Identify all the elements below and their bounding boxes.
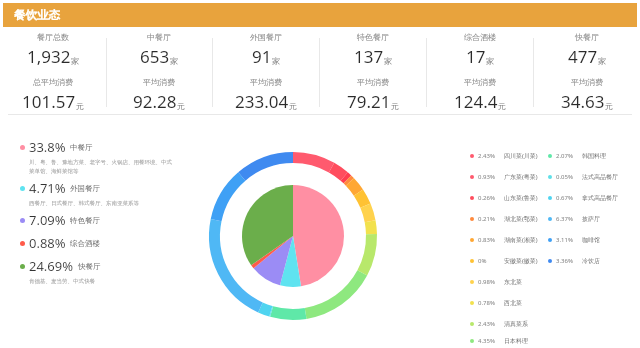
button[interactable]: 0.05% bbox=[548, 166, 618, 187]
staticText: 川、粤、鲁、豫地方菜、老字号、火锅店、用餐环境、中式 bbox=[29, 159, 172, 166]
staticText: 中餐厅 bbox=[70, 143, 93, 152]
staticText: 0.78% bbox=[478, 299, 495, 307]
staticText: 快餐厅 bbox=[78, 262, 101, 271]
staticText: 33.8% bbox=[29, 138, 66, 156]
staticText: 日本料理 bbox=[504, 337, 528, 345]
button[interactable]: 0.21% bbox=[470, 208, 538, 229]
staticText: 元 bbox=[498, 101, 506, 111]
staticText: 24.69% bbox=[29, 257, 74, 275]
staticText: 元 bbox=[76, 101, 84, 111]
staticText: 西餐厅、日式餐厅、韩式餐厅、东南亚菜系等 bbox=[29, 200, 139, 207]
staticText: 综合酒楼 bbox=[70, 239, 100, 248]
button[interactable]: 6.37% bbox=[548, 208, 600, 229]
staticText: 3.36% bbox=[556, 257, 573, 265]
staticText: 家 bbox=[71, 56, 79, 66]
staticText: 92.28 bbox=[133, 90, 177, 113]
button[interactable]: 餐厅总数 bbox=[0, 30, 106, 114]
staticText: 平均消费 bbox=[143, 77, 175, 87]
staticText: 元 bbox=[605, 101, 613, 111]
staticText: 特色餐厅 bbox=[70, 216, 100, 225]
staticText: 0.88% bbox=[29, 234, 66, 252]
staticText: 平均消费 bbox=[357, 77, 389, 87]
staticText: 湖南菜(湘菜) bbox=[504, 236, 538, 244]
button[interactable]: 7.09% bbox=[20, 211, 100, 229]
button[interactable]: 0.93% bbox=[470, 166, 538, 187]
button[interactable]: 4.35% bbox=[470, 334, 528, 348]
button[interactable]: 2.43% bbox=[470, 313, 528, 334]
staticText: 咖啡馆 bbox=[582, 236, 600, 244]
staticText: 总平均消费 bbox=[33, 77, 73, 87]
button[interactable]: 0.67% bbox=[548, 187, 618, 208]
staticText: 东北菜 bbox=[504, 278, 522, 286]
staticText: 家 bbox=[170, 56, 178, 66]
staticText: 元 bbox=[289, 101, 297, 111]
staticText: 综合酒楼 bbox=[464, 32, 496, 42]
staticText: 拿式高品餐厅 bbox=[582, 194, 618, 202]
staticText: 法式高品餐厅 bbox=[582, 173, 618, 181]
staticText: 广东菜(粤菜) bbox=[504, 173, 538, 181]
button[interactable]: 3.36% bbox=[548, 250, 600, 271]
staticText: 79.21 bbox=[347, 90, 391, 113]
staticText: 2.07% bbox=[556, 152, 573, 160]
staticText: 0.21% bbox=[478, 215, 495, 223]
staticText: 西北菜 bbox=[504, 299, 522, 307]
staticText: 披萨厅 bbox=[582, 215, 600, 223]
button[interactable]: 2.43% bbox=[470, 145, 538, 166]
button[interactable]: 特色餐厅 bbox=[319, 30, 426, 114]
button[interactable]: 餐饮业态 bbox=[3, 3, 637, 27]
staticText: 101.57 bbox=[22, 90, 76, 113]
staticText: 特色餐厅 bbox=[357, 32, 389, 42]
staticText: 家 bbox=[384, 56, 392, 66]
staticText: 6.37% bbox=[556, 215, 573, 223]
button[interactable]: 快餐厅 bbox=[533, 30, 640, 114]
staticText: 餐厅总数 bbox=[37, 32, 69, 42]
button[interactable]: 0.83% bbox=[470, 229, 538, 250]
button[interactable]: 中餐厅 bbox=[106, 30, 212, 114]
staticText: 233.04 bbox=[235, 90, 289, 113]
button[interactable]: 0.78% bbox=[470, 292, 522, 313]
staticText: 家 bbox=[486, 56, 494, 66]
button[interactable]: 2.07% bbox=[548, 145, 606, 166]
staticText: 0.26% bbox=[478, 194, 495, 202]
staticText: 124.4 bbox=[454, 90, 498, 113]
button[interactable]: 3.11% bbox=[548, 229, 600, 250]
staticText: 7.09% bbox=[29, 211, 66, 229]
button[interactable]: 0.98% bbox=[470, 271, 522, 292]
staticText: 4.35% bbox=[478, 337, 495, 345]
staticText: 安徽菜(徽菜) bbox=[504, 257, 538, 265]
button[interactable]: 24.69% bbox=[20, 257, 101, 275]
staticText: 2.43% bbox=[478, 152, 495, 160]
staticText: 4.71% bbox=[29, 179, 66, 197]
staticText: 菜单馆、海鲜菜馆等 bbox=[29, 168, 79, 175]
staticText: 肯德基、麦当劳、中式快餐 bbox=[29, 278, 95, 285]
staticText: 湖北菜(鄂菜) bbox=[504, 215, 538, 223]
button[interactable]: 0.26% bbox=[470, 187, 538, 208]
staticText: 餐饮业态 bbox=[14, 8, 60, 22]
staticText: 元 bbox=[391, 101, 399, 111]
staticText: 四川菜(川菜) bbox=[504, 152, 538, 160]
staticText: 家 bbox=[272, 56, 280, 66]
button[interactable]: 0.88% bbox=[20, 234, 100, 252]
staticText: 0.98% bbox=[478, 278, 495, 286]
staticText: 3.11% bbox=[556, 236, 573, 244]
staticText: 0.67% bbox=[556, 194, 573, 202]
staticText: 0.05% bbox=[556, 173, 573, 181]
staticText: 477 bbox=[568, 45, 598, 68]
staticText: 17 bbox=[466, 45, 486, 68]
staticText: 外国餐厅 bbox=[250, 32, 282, 42]
staticText: 清真菜系 bbox=[504, 320, 528, 328]
staticText: 冷饮店 bbox=[582, 257, 600, 265]
button[interactable]: 4.71% bbox=[20, 179, 100, 197]
staticText: 平均消费 bbox=[464, 77, 496, 87]
button[interactable]: 33.8% bbox=[20, 138, 93, 156]
button[interactable]: 综合酒楼 bbox=[426, 30, 533, 114]
staticText: 137 bbox=[354, 45, 384, 68]
staticText: 山东菜(鲁菜) bbox=[504, 194, 538, 202]
staticText: 中餐厅 bbox=[147, 32, 171, 42]
button[interactable]: 外国餐厅 bbox=[212, 30, 319, 114]
staticText: 平均消费 bbox=[571, 77, 603, 87]
staticText: 1,932 bbox=[27, 45, 71, 68]
staticText: 34.63 bbox=[561, 90, 605, 113]
button[interactable]: 0% bbox=[470, 250, 538, 271]
staticText: 0% bbox=[478, 257, 487, 265]
